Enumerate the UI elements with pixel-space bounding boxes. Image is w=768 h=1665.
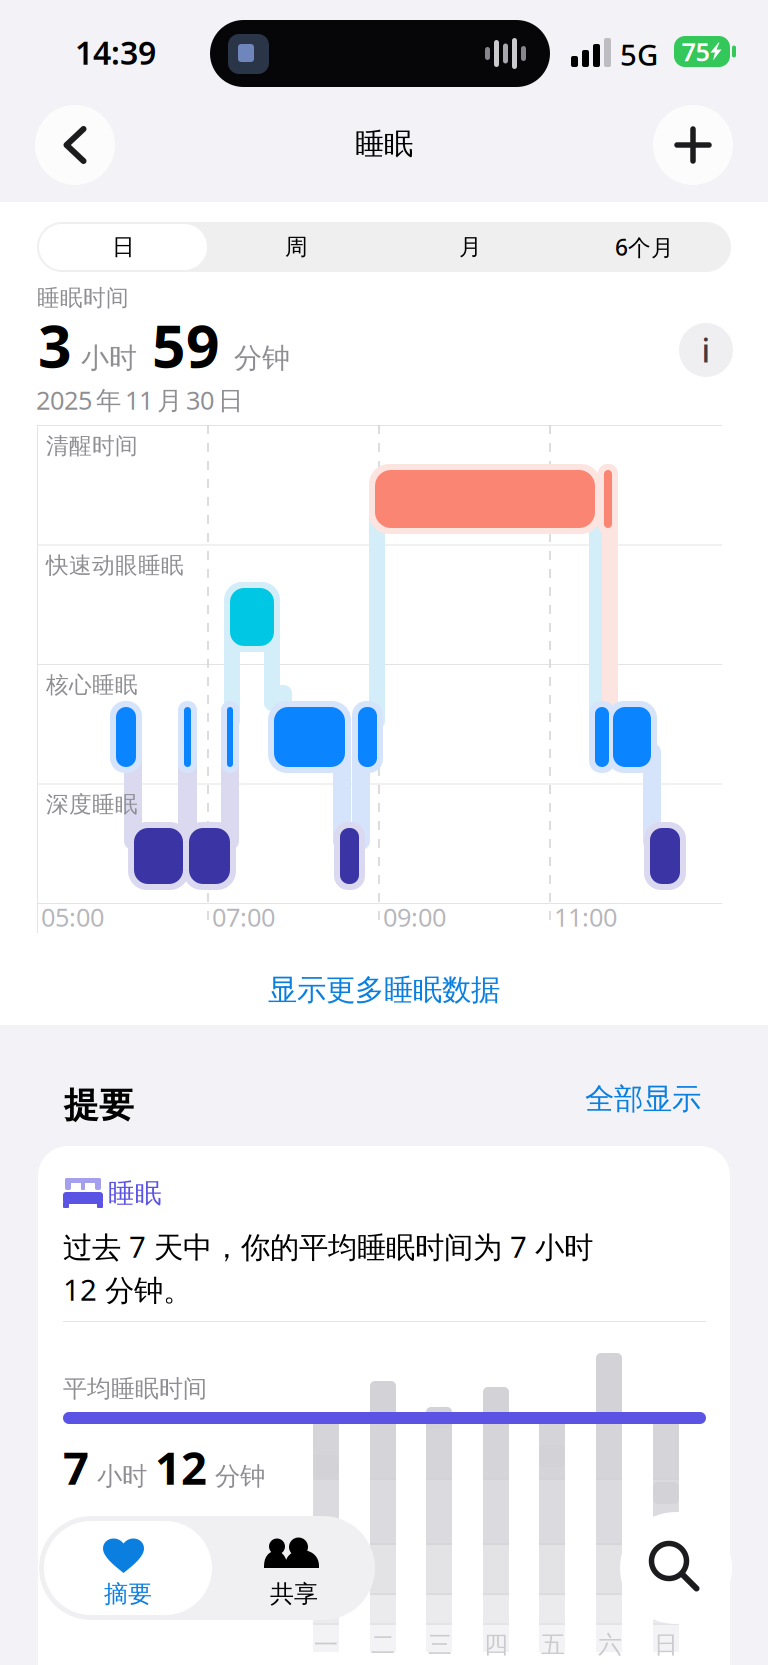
staticText: 睡眠	[355, 126, 413, 162]
staticText: 14:39	[75, 31, 156, 73]
staticText: 睡眠时间	[37, 284, 129, 312]
button[interactable]: 日	[37, 222, 210, 272]
button[interactable]: 摘要	[44, 1521, 212, 1615]
staticText: 三	[428, 1630, 452, 1659]
staticText: 12	[155, 1437, 207, 1497]
staticText: 7	[63, 1437, 89, 1497]
button[interactable]: 月	[384, 222, 557, 272]
staticText: 全部显示	[585, 1081, 701, 1117]
button[interactable]: 6个月	[558, 222, 731, 272]
staticText: 睡眠	[108, 1177, 162, 1210]
staticText: 07:00	[212, 900, 275, 934]
staticText: 75	[681, 35, 709, 68]
button[interactable]: 周	[210, 222, 383, 272]
staticText: 深度睡眠	[46, 790, 138, 818]
staticText: 周	[285, 233, 308, 261]
staticText: 核心睡眠	[46, 671, 138, 699]
staticText: 日	[654, 1630, 678, 1659]
button[interactable]: 返回	[35, 105, 115, 185]
staticText: 五	[541, 1630, 565, 1659]
staticText: 共享	[270, 1579, 318, 1609]
staticText: 2025 年 11 月 30 日	[36, 383, 243, 417]
staticText: 快速动眼睡眠	[46, 551, 184, 579]
staticText: 提要	[64, 1084, 134, 1127]
staticText: 六	[598, 1630, 622, 1659]
button[interactable]: 信息	[679, 323, 733, 377]
staticText: 四	[484, 1630, 508, 1659]
staticText: 12 分钟。	[63, 1270, 192, 1309]
staticText: 3	[38, 306, 72, 384]
staticText: 摘要	[104, 1579, 152, 1609]
button[interactable]: 搜索	[620, 1512, 732, 1624]
staticText: 分钟	[234, 341, 290, 375]
staticText: i	[701, 329, 710, 371]
staticText: 过去 7 天中，你的平均睡眠时间为 7 小时	[63, 1227, 593, 1266]
staticText: 59	[152, 306, 220, 384]
staticText: 显示更多睡眠数据	[268, 972, 500, 1008]
button[interactable]: 添加数据	[653, 105, 733, 185]
button[interactable]: 共享	[212, 1521, 376, 1615]
staticText: 05:00	[41, 900, 104, 934]
staticText: 清醒时间	[46, 432, 138, 460]
staticText: 5G	[620, 35, 658, 74]
staticText: 11:00	[554, 900, 617, 934]
staticText: 分钟	[207, 1461, 265, 1492]
button[interactable]: 显示更多睡眠数据	[0, 960, 768, 1020]
staticText: 09:00	[383, 900, 446, 934]
staticText: 小时	[89, 1461, 155, 1492]
staticText: 日	[112, 233, 135, 261]
staticText: 二	[371, 1630, 395, 1659]
staticText: 月	[459, 233, 482, 261]
staticText: 小时	[81, 341, 137, 375]
button[interactable]: 全部显示	[561, 1079, 701, 1119]
staticText: 6个月	[615, 232, 674, 262]
staticText: 一	[314, 1630, 338, 1659]
staticText: 平均睡眠时间	[63, 1374, 207, 1403]
